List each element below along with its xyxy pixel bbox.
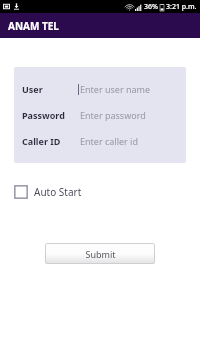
- staticText: ANAM TEL: [8, 19, 59, 33]
- staticText: 36%: [144, 2, 158, 12]
- button[interactable]: Caller ID: [14, 128, 186, 154]
- staticText: Enter user name: [80, 83, 151, 95]
- button[interactable]: Password: [14, 102, 186, 128]
- staticText: Password: [22, 109, 78, 121]
- staticText: Auto Start: [34, 185, 82, 199]
- staticText: Enter password: [80, 109, 146, 121]
- button[interactable]: User: [14, 76, 186, 102]
- staticText: 3:21 p.m.: [166, 2, 197, 12]
- staticText: Caller ID: [22, 135, 78, 147]
- button[interactable]: Auto Start: [14, 183, 90, 201]
- button[interactable]: Submit: [45, 243, 155, 264]
- staticText: User: [22, 83, 78, 95]
- staticText: Enter caller id: [80, 135, 138, 147]
- staticText: Submit: [85, 248, 116, 260]
